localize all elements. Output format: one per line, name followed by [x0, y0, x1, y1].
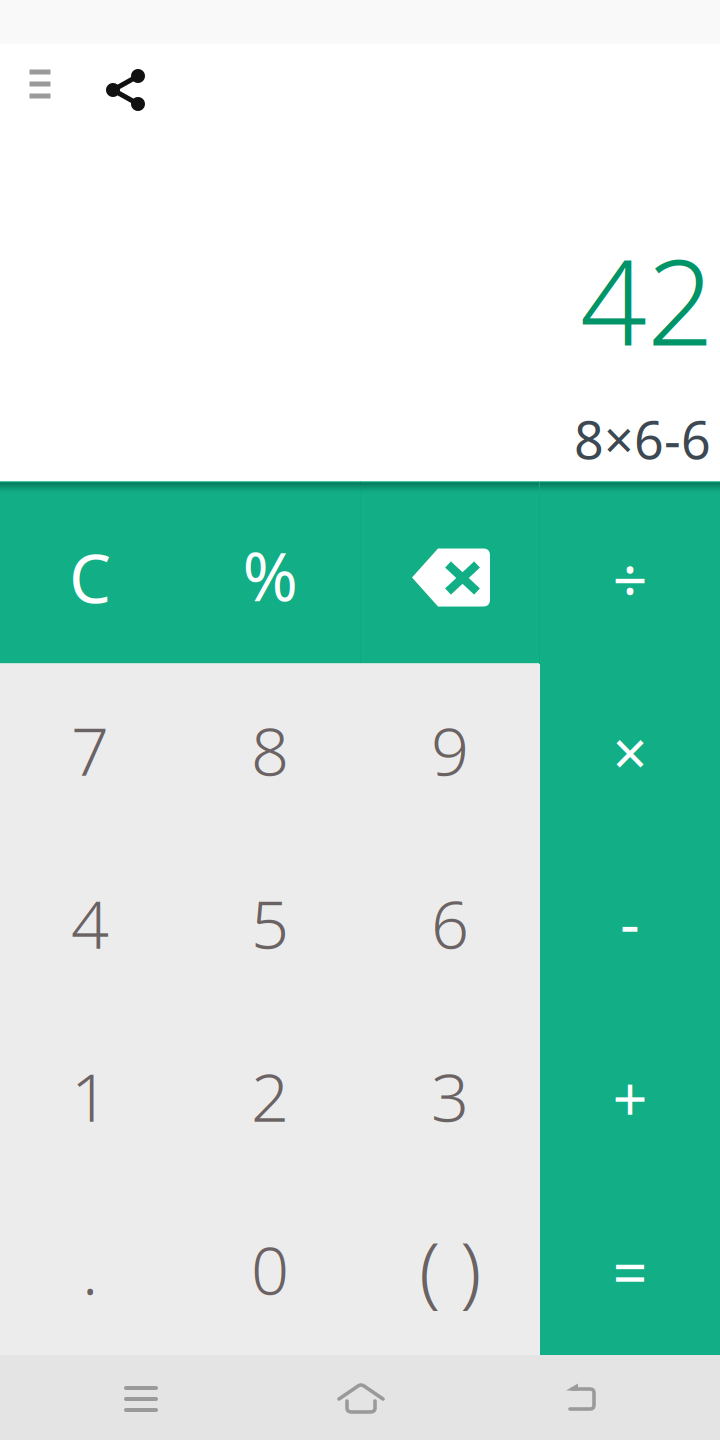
button[interactable]: Recents	[0, 1355, 240, 1440]
button[interactable]: ×	[540, 663, 720, 836]
button[interactable]: 9	[360, 663, 540, 836]
button[interactable]: ( )	[360, 1182, 540, 1355]
button[interactable]: Home	[240, 1355, 480, 1440]
button[interactable]: 7	[0, 663, 180, 836]
button[interactable]: 5	[180, 836, 360, 1009]
staticText: 7	[71, 706, 109, 794]
button[interactable]: =	[540, 1182, 720, 1355]
staticText: 6	[431, 879, 469, 967]
button[interactable]: Delete	[360, 481, 540, 663]
staticText: 9	[431, 706, 469, 794]
staticText: C	[69, 533, 111, 622]
staticText: 4	[71, 879, 109, 967]
button[interactable]: +	[540, 1009, 720, 1182]
staticText: -	[620, 881, 640, 963]
staticText: ÷	[612, 539, 647, 620]
button[interactable]: 6	[360, 836, 540, 1009]
staticText: ×	[612, 711, 647, 793]
button[interactable]: .	[0, 1182, 180, 1355]
staticText: 8×6-6	[574, 404, 711, 474]
staticText: ( )	[419, 1218, 481, 1320]
button[interactable]: 0	[180, 1182, 360, 1355]
button[interactable]: 1	[0, 1009, 180, 1182]
button[interactable]: 8	[180, 663, 360, 836]
staticText: .	[82, 1225, 98, 1313]
staticText: 42	[580, 222, 714, 378]
staticText: %	[242, 531, 297, 620]
button[interactable]: 2	[180, 1009, 360, 1182]
button[interactable]: 4	[0, 836, 180, 1009]
staticText: 1	[71, 1052, 109, 1140]
button[interactable]: C	[0, 481, 180, 663]
staticText: +	[612, 1057, 647, 1139]
button[interactable]: Back	[480, 1355, 720, 1440]
staticText: =	[612, 1231, 647, 1313]
button[interactable]: Share	[98, 62, 154, 118]
staticText: 3	[431, 1052, 469, 1140]
button[interactable]: ÷	[540, 481, 720, 663]
button[interactable]: 3	[360, 1009, 540, 1182]
staticText: 5	[251, 879, 289, 967]
staticText: 2	[251, 1052, 289, 1140]
button[interactable]: Menu	[12, 56, 68, 112]
button[interactable]: %	[180, 481, 360, 663]
staticText: 0	[251, 1225, 289, 1313]
button[interactable]: -	[540, 836, 720, 1009]
staticText: 8	[251, 706, 289, 794]
